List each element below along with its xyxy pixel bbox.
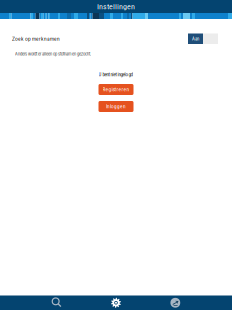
button[interactable]: Instellingen (86, 295, 146, 310)
button[interactable]: Registreren (98, 84, 133, 95)
staticText: Instellingen (97, 2, 135, 11)
button[interactable]: Over de app (146, 295, 205, 310)
button[interactable]: Zoeken (27, 295, 86, 310)
staticText: Anders wordt er alleen op stofnamen gezo… (15, 51, 91, 57)
staticText: Registreren (102, 86, 129, 93)
staticText: Zoek op merknamen (12, 35, 60, 42)
staticText: U bent niet ingelogd (98, 71, 133, 77)
button[interactable]: Aan (188, 33, 218, 44)
button[interactable]: Inloggen (98, 101, 133, 112)
staticText: Aan (192, 36, 199, 41)
staticText: Inloggen (106, 103, 126, 110)
